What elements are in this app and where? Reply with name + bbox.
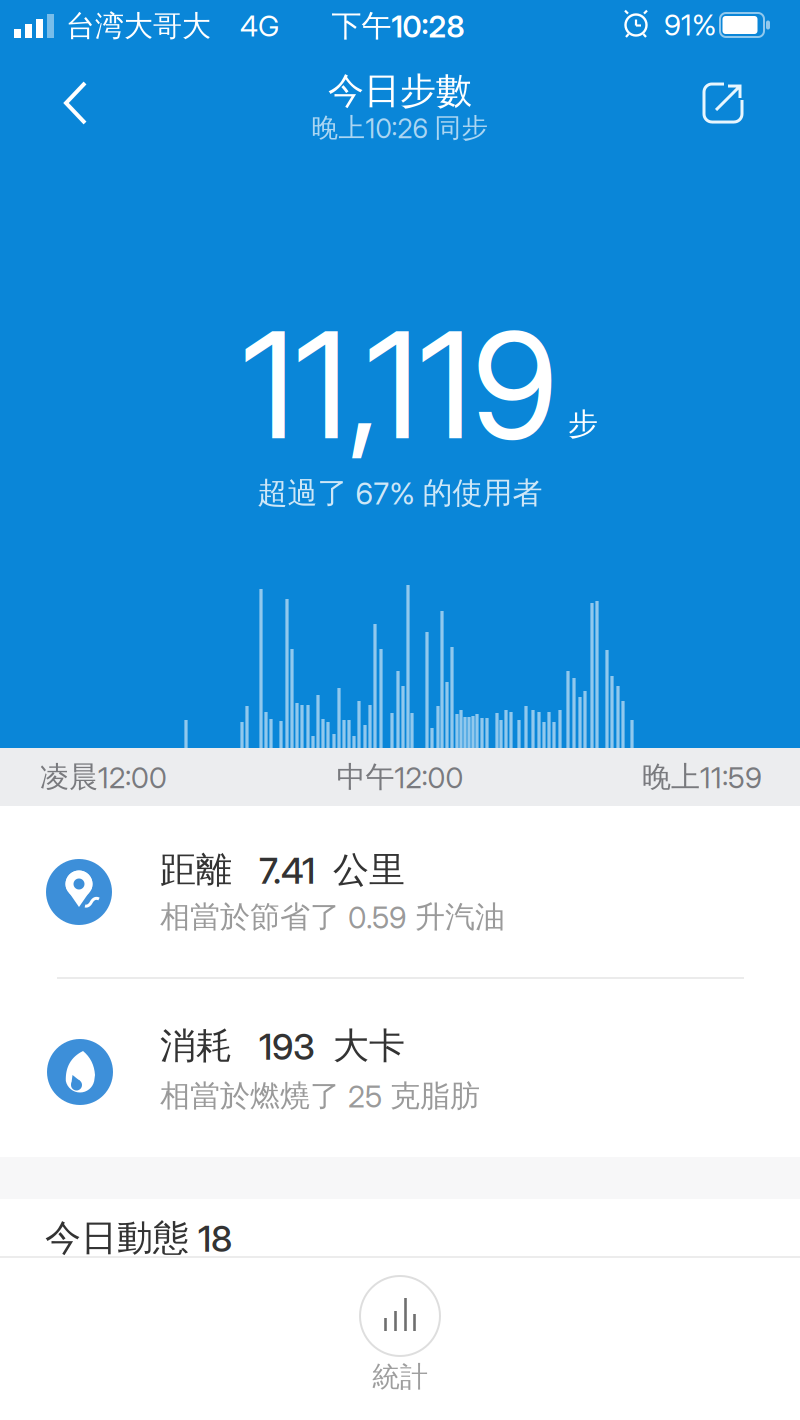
- staticText: 晚上10:26 同步: [311, 111, 488, 145]
- staticText: 距離 7.41 公里: [160, 847, 405, 893]
- staticText: 統計: [372, 1359, 428, 1395]
- staticText: 消耗 193 大卡: [160, 1023, 405, 1069]
- staticText: 晚上11:59: [642, 759, 762, 795]
- staticText: 今日步數: [328, 68, 472, 114]
- staticText: 台湾大哥大: [66, 8, 211, 44]
- staticText: 凌晨12:00: [40, 759, 167, 795]
- staticText: 超過了 67% 的使用者: [257, 474, 542, 512]
- staticText: 91%: [664, 7, 716, 43]
- staticText: 中午12:00: [336, 759, 463, 795]
- staticText: 4G: [240, 8, 279, 44]
- staticText: 11,119: [242, 296, 558, 474]
- staticText: 下午10:28: [331, 7, 464, 45]
- staticText: 步: [568, 405, 598, 443]
- staticText: 相當於節省了 0.59 升汽油: [160, 898, 505, 936]
- staticText: 相當於燃燒了 25 克脂肪: [160, 1077, 480, 1115]
- staticText: 今日動態 18: [45, 1215, 232, 1261]
